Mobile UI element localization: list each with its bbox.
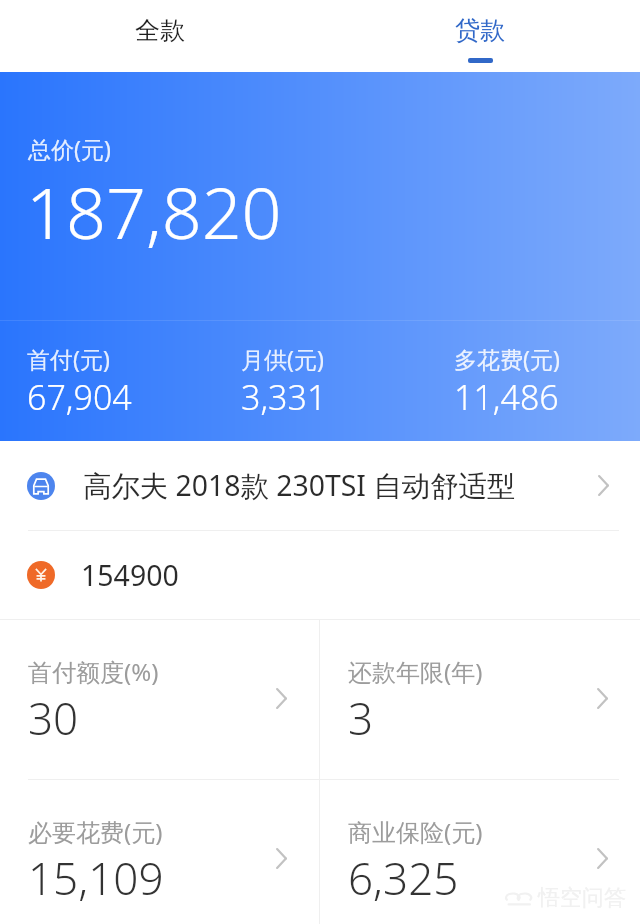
staticText: 高尔夫 2018款 230TSI 自动舒适型 bbox=[83, 466, 516, 505]
staticText: 15,109 bbox=[28, 848, 164, 908]
button[interactable]: 商业保险(元) bbox=[320, 780, 640, 924]
button[interactable]: 还款年限(年) bbox=[320, 620, 640, 779]
other: Edit 必要花费(元) bbox=[276, 848, 287, 869]
staticText: 总价(元) bbox=[28, 133, 111, 164]
staticText: 6,325 bbox=[348, 848, 459, 908]
staticText: 多花费(元) bbox=[454, 343, 560, 374]
button[interactable]: 全款 bbox=[0, 0, 320, 72]
staticText: 月供(元) bbox=[241, 343, 324, 374]
staticText: 首付额度(%) bbox=[28, 655, 159, 688]
other: Edit 首付额度(%) bbox=[276, 688, 287, 709]
staticText: 3,331 bbox=[241, 374, 327, 420]
button[interactable]: 高尔夫 2018款 230TSI 自动舒适型 bbox=[0, 441, 640, 530]
button[interactable]: 贷款 bbox=[320, 0, 640, 72]
other: Edit 商业保险(元) bbox=[597, 848, 608, 869]
staticText: 全款 bbox=[135, 15, 185, 46]
other: Choose car model bbox=[598, 475, 609, 496]
staticText: 67,904 bbox=[27, 374, 132, 420]
button[interactable]: 154900 bbox=[0, 531, 640, 619]
staticText: 悟空问答 bbox=[538, 884, 626, 912]
button[interactable]: 首付额度(%) bbox=[0, 620, 319, 779]
staticText: 必要花费(元) bbox=[28, 815, 163, 848]
staticText: 30 bbox=[28, 688, 79, 748]
other: Edit 还款年限(年) bbox=[597, 688, 608, 709]
staticText: 商业保险(元) bbox=[348, 815, 483, 848]
staticText: 还款年限(年) bbox=[348, 655, 483, 688]
staticText: 3 bbox=[348, 688, 374, 748]
staticText: 11,486 bbox=[454, 374, 559, 420]
staticText: 154900 bbox=[81, 556, 179, 595]
button[interactable]: 必要花费(元) bbox=[0, 780, 319, 924]
staticText: 贷款 bbox=[455, 15, 505, 46]
staticText: 187,820 bbox=[26, 164, 282, 259]
staticText: 首付(元) bbox=[27, 343, 110, 374]
